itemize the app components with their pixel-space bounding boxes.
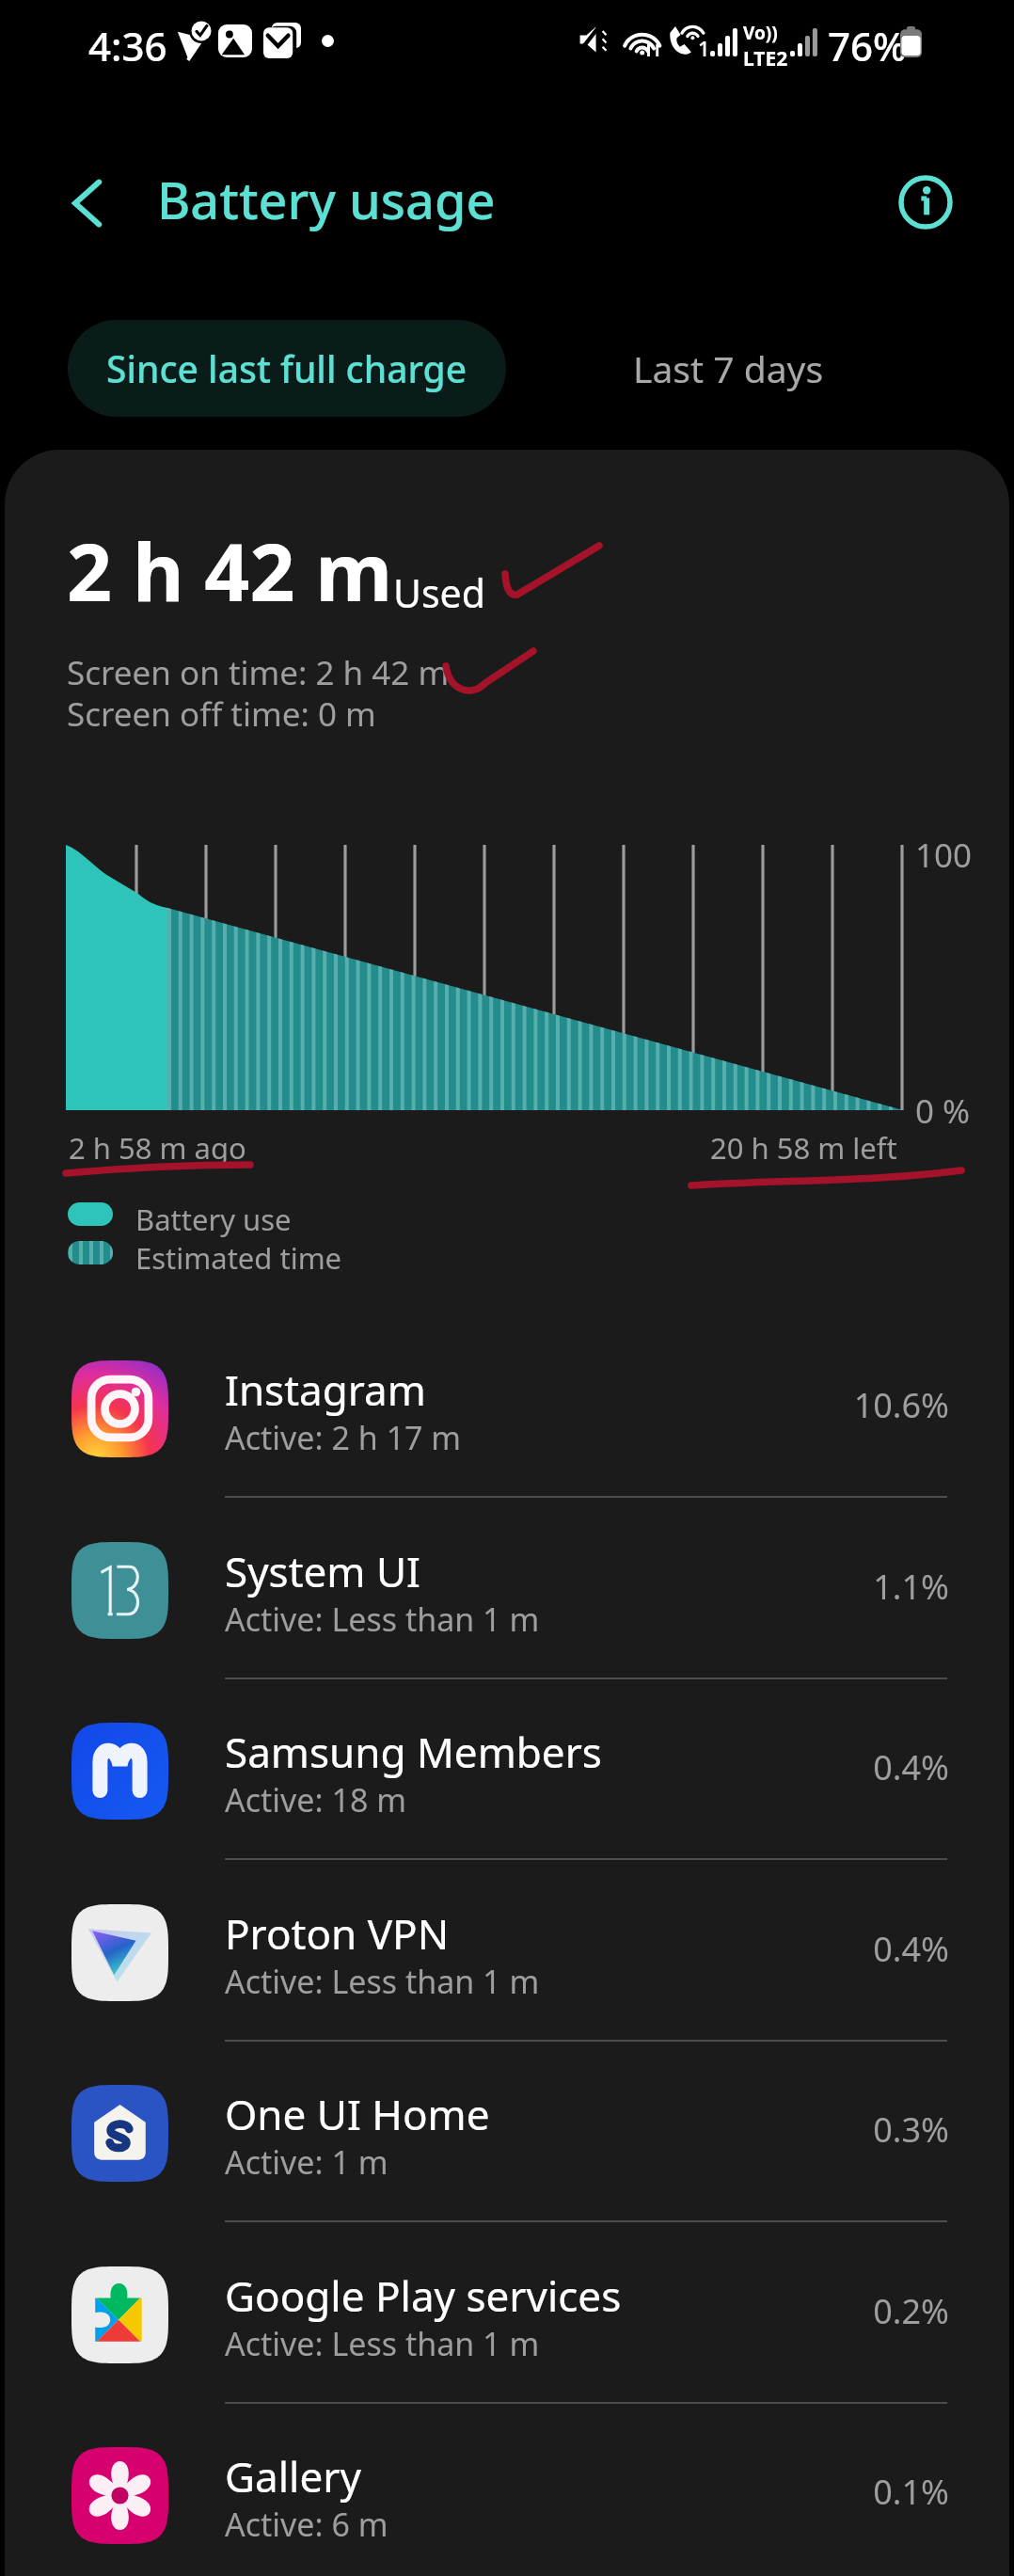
staticText: 100 [915, 833, 973, 878]
staticText: Screen off time: 0 m [67, 692, 376, 737]
staticText: 0.1% [873, 2469, 949, 2515]
staticText: Vo)) [743, 21, 778, 45]
staticText: Used [393, 566, 485, 619]
staticText: LTE2 [743, 45, 788, 72]
staticText: 2 h 42 m [67, 517, 393, 624]
button[interactable]: Samsung Members [5, 1678, 1009, 1860]
staticText: Active: Less than 1 m [225, 2322, 540, 2365]
staticText: Active: 6 m [225, 2503, 388, 2546]
button[interactable]: Since last full charge [68, 320, 506, 417]
button[interactable]: Navigate up [36, 151, 141, 256]
staticText: Active: 1 m [225, 2140, 388, 2184]
button[interactable]: Last 7 days [540, 320, 916, 417]
staticText: 1.1% [873, 1564, 949, 1610]
staticText: 2 h 58 m ago [69, 1128, 246, 1168]
button[interactable]: Proton VPN [5, 1860, 1009, 2042]
staticText: Active: Less than 1 m [225, 1960, 540, 2003]
staticText: Active: 18 m [225, 1778, 407, 1821]
button[interactable]: Information [874, 151, 977, 254]
staticText: Instagram [225, 1361, 426, 1418]
button[interactable]: Instagram [5, 1316, 1009, 1498]
staticText: Estimated time [135, 1238, 342, 1278]
staticText: 0 % [915, 1089, 971, 1134]
button[interactable]: System UI [5, 1498, 1009, 1679]
button[interactable]: Gallery [5, 2403, 1009, 2576]
button[interactable]: One UI Home [5, 2041, 1009, 2222]
staticText: Last 7 days [633, 343, 824, 393]
staticText: 1 [698, 34, 710, 62]
staticText: Active: 2 h 17 m [225, 1416, 462, 1459]
staticText: 10.6% [853, 1382, 949, 1428]
staticText: Since last full charge [106, 343, 467, 393]
staticText: Google Play services [225, 2267, 622, 2324]
staticText: 20 h 58 m left [710, 1128, 897, 1168]
staticText: Proton VPN [225, 1905, 450, 1962]
staticText: One UI Home [225, 2086, 490, 2142]
staticText: 0.3% [873, 2107, 949, 2153]
button[interactable]: Google Play services [5, 2222, 1009, 2404]
staticText: 76% [828, 19, 907, 72]
staticText: 0.4% [873, 1926, 949, 1972]
staticText: Samsung Members [225, 1724, 602, 1780]
staticText: 0.2% [873, 2288, 949, 2334]
staticText: 0.4% [873, 1744, 949, 1790]
staticText: Battery usage [157, 165, 496, 234]
staticText: Screen on time: 2 h 42 m [67, 650, 450, 695]
staticText: Battery use [135, 1200, 292, 1239]
staticText: Active: Less than 1 m [225, 1598, 540, 1641]
staticText: System UI [225, 1543, 421, 1599]
staticText: Gallery [225, 2448, 361, 2504]
staticText: 4:36 [88, 19, 167, 72]
